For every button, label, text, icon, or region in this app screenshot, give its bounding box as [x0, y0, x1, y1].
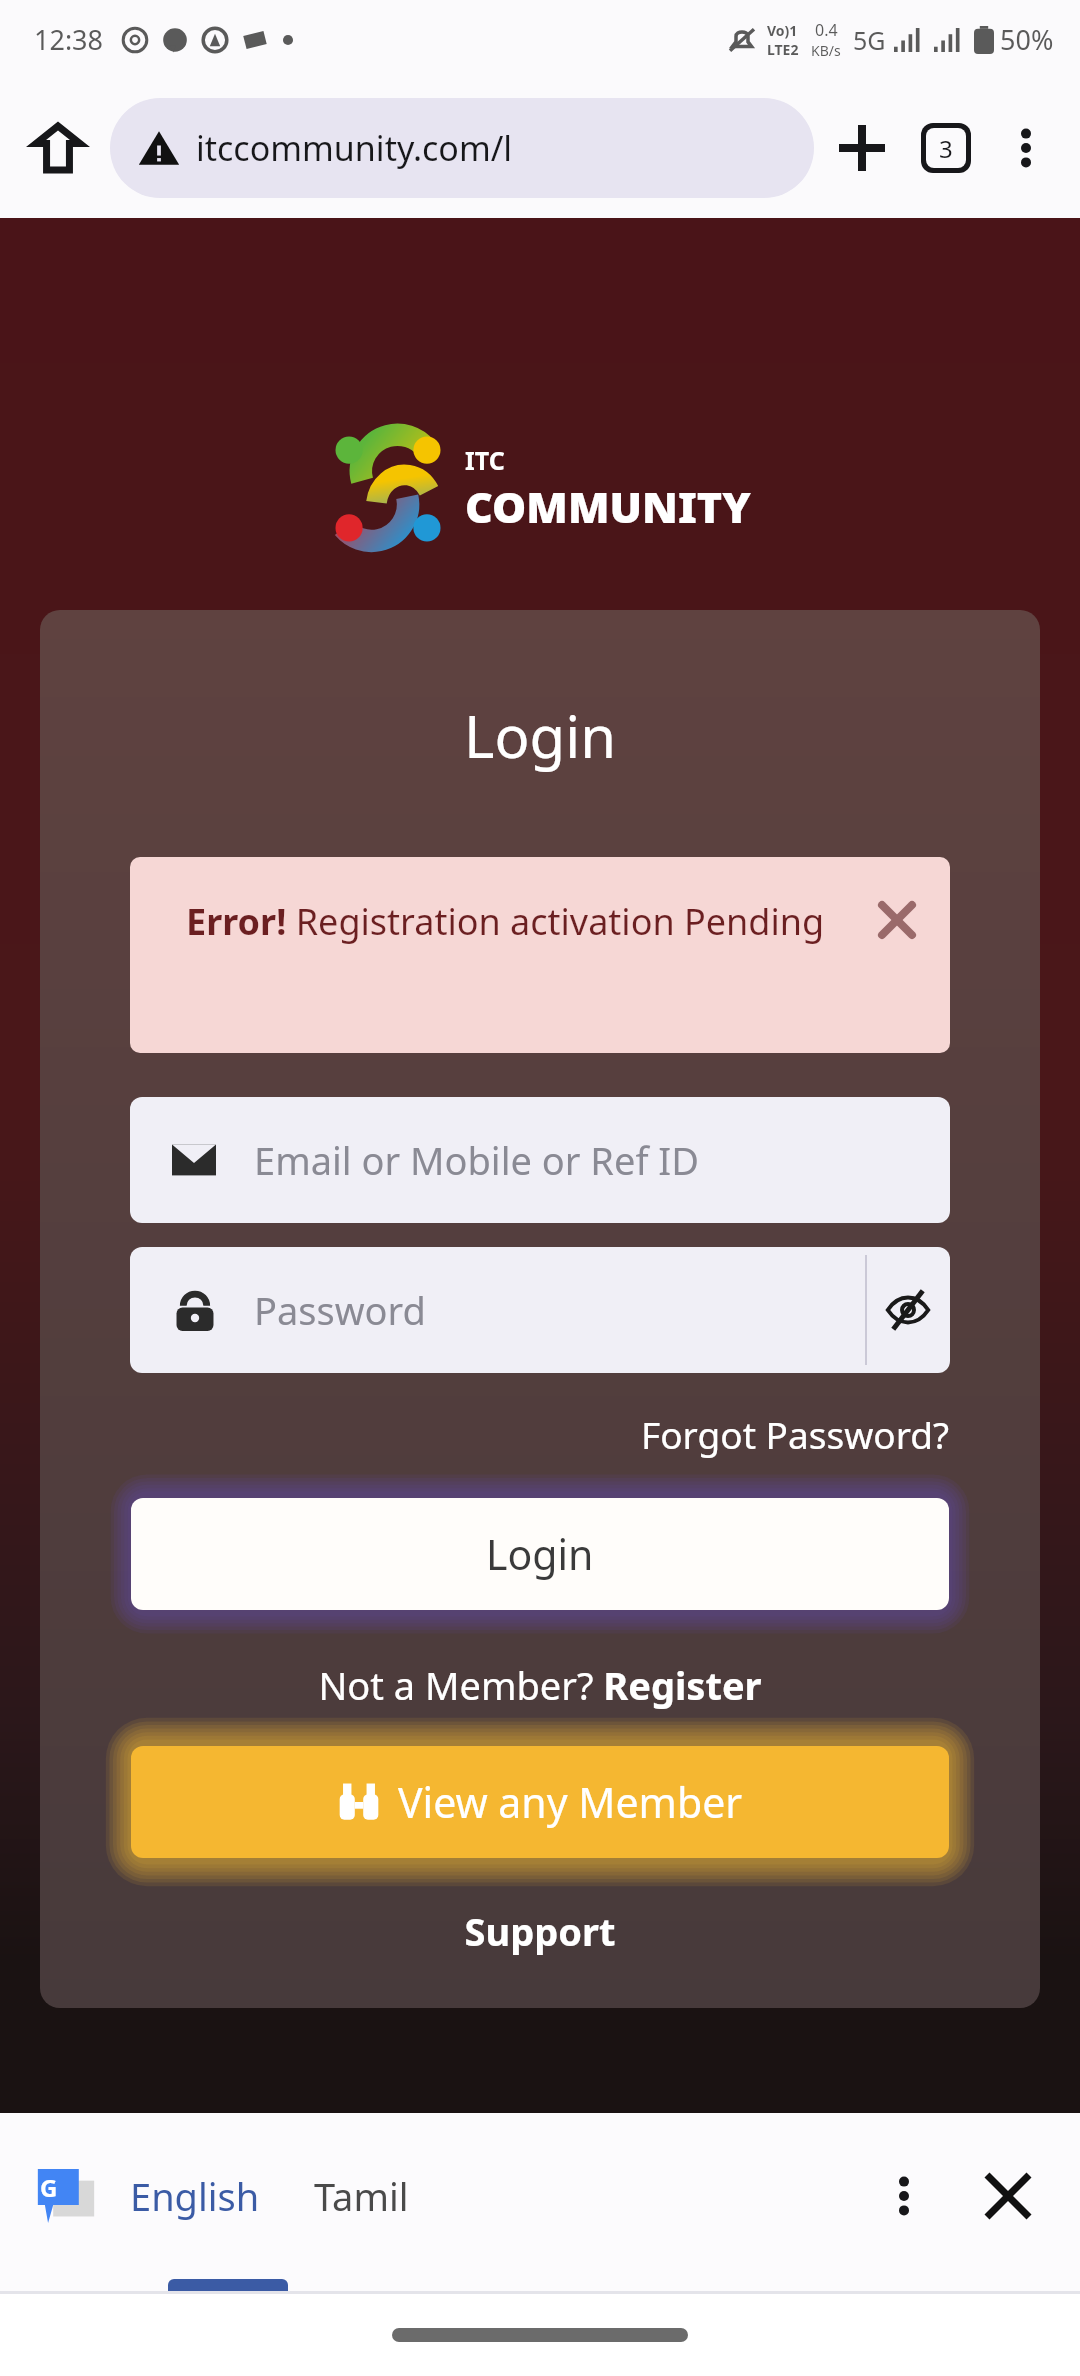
staticText: Login: [40, 696, 1040, 775]
button[interactable]: Forgot Password?: [641, 1409, 950, 1459]
staticText: LTE2: [767, 40, 799, 59]
button[interactable]: View any Member: [131, 1746, 949, 1858]
button[interactable]: Show password: [866, 1247, 950, 1373]
staticText: 0.4: [815, 19, 838, 41]
staticText: COMMUNITY: [465, 477, 751, 536]
button[interactable]: Support: [40, 1905, 1040, 1957]
staticText: 3: [939, 132, 953, 165]
button[interactable]: Email or Mobile or Ref ID: [130, 1097, 950, 1223]
button[interactable]: Dismiss error: [868, 891, 926, 949]
button[interactable]: New tab: [820, 106, 904, 190]
staticText: itccommunity.com/l: [196, 125, 513, 171]
button[interactable]: Translate options: [866, 2158, 942, 2234]
button[interactable]: Not a Member? Register: [40, 1659, 1040, 1711]
button[interactable]: Tamil: [314, 2170, 409, 2222]
button[interactable]: Close translate bar: [970, 2158, 1046, 2234]
staticText: Error! Registration activation Pending: [186, 897, 825, 946]
button[interactable]: English: [130, 2170, 260, 2222]
staticText: KB/s: [811, 41, 841, 60]
staticText: 5G: [853, 23, 886, 57]
button[interactable]: Password: [130, 1247, 950, 1373]
staticText: Vo)1: [767, 21, 798, 40]
staticText: ITC: [465, 443, 505, 477]
staticText: Email or Mobile or Ref ID: [254, 1134, 699, 1186]
button[interactable]: itccommunity.com/l: [110, 98, 814, 198]
staticText: Password: [254, 1284, 426, 1336]
staticText: View any Member: [398, 1774, 743, 1830]
staticText: Login: [486, 1526, 594, 1582]
staticText: 12:38: [34, 21, 104, 58]
staticText: 50%: [1000, 21, 1054, 58]
button[interactable]: More options: [988, 110, 1064, 186]
button[interactable]: Login: [131, 1498, 949, 1610]
button[interactable]: Home: [16, 106, 100, 190]
staticText: G: [40, 2171, 58, 2204]
button[interactable]: Tabs, 3 open: [904, 106, 988, 190]
